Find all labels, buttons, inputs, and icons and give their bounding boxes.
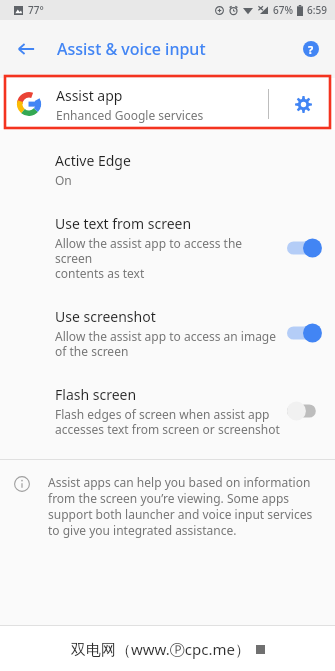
staticText: Allow the assist app to access the scree…	[55, 235, 281, 281]
button[interactable]: Assist app	[0, 78, 335, 130]
staticText: On	[55, 172, 72, 188]
staticText: Assist app	[56, 86, 123, 105]
staticText: Enhanced Google services	[56, 107, 204, 123]
button[interactable]: Off	[287, 400, 323, 422]
button[interactable]: Use text from screen	[0, 201, 335, 294]
staticText: 双电网（www.Ⓟcpc.me）	[71, 639, 250, 659]
staticText: Flash screen	[55, 385, 137, 404]
staticText: Assist & voice input	[57, 38, 206, 60]
button[interactable]: On	[287, 322, 323, 344]
staticText: Use text from screen	[55, 214, 192, 233]
staticText: Active Edge	[55, 151, 131, 170]
button[interactable]: Use screenshot	[0, 294, 335, 372]
staticText: Flash edges of screen when assist app ac…	[55, 406, 280, 437]
staticText: Allow the assist app to access an image …	[55, 328, 277, 359]
staticText: 67%	[273, 3, 293, 17]
staticText: 6:59	[307, 3, 327, 17]
staticText: ?	[308, 42, 314, 57]
staticText: Assist apps can help you based on inform…	[48, 474, 319, 538]
button[interactable]: Assist app settings	[281, 82, 325, 126]
button[interactable]: Active Edge	[0, 138, 335, 201]
staticText: Use screenshot	[55, 307, 156, 326]
button[interactable]: On	[287, 237, 323, 259]
staticText: 77°	[28, 3, 44, 17]
button[interactable]: Flash screen	[0, 372, 335, 450]
button[interactable]: Help	[293, 31, 329, 67]
button[interactable]: Back	[6, 29, 46, 69]
